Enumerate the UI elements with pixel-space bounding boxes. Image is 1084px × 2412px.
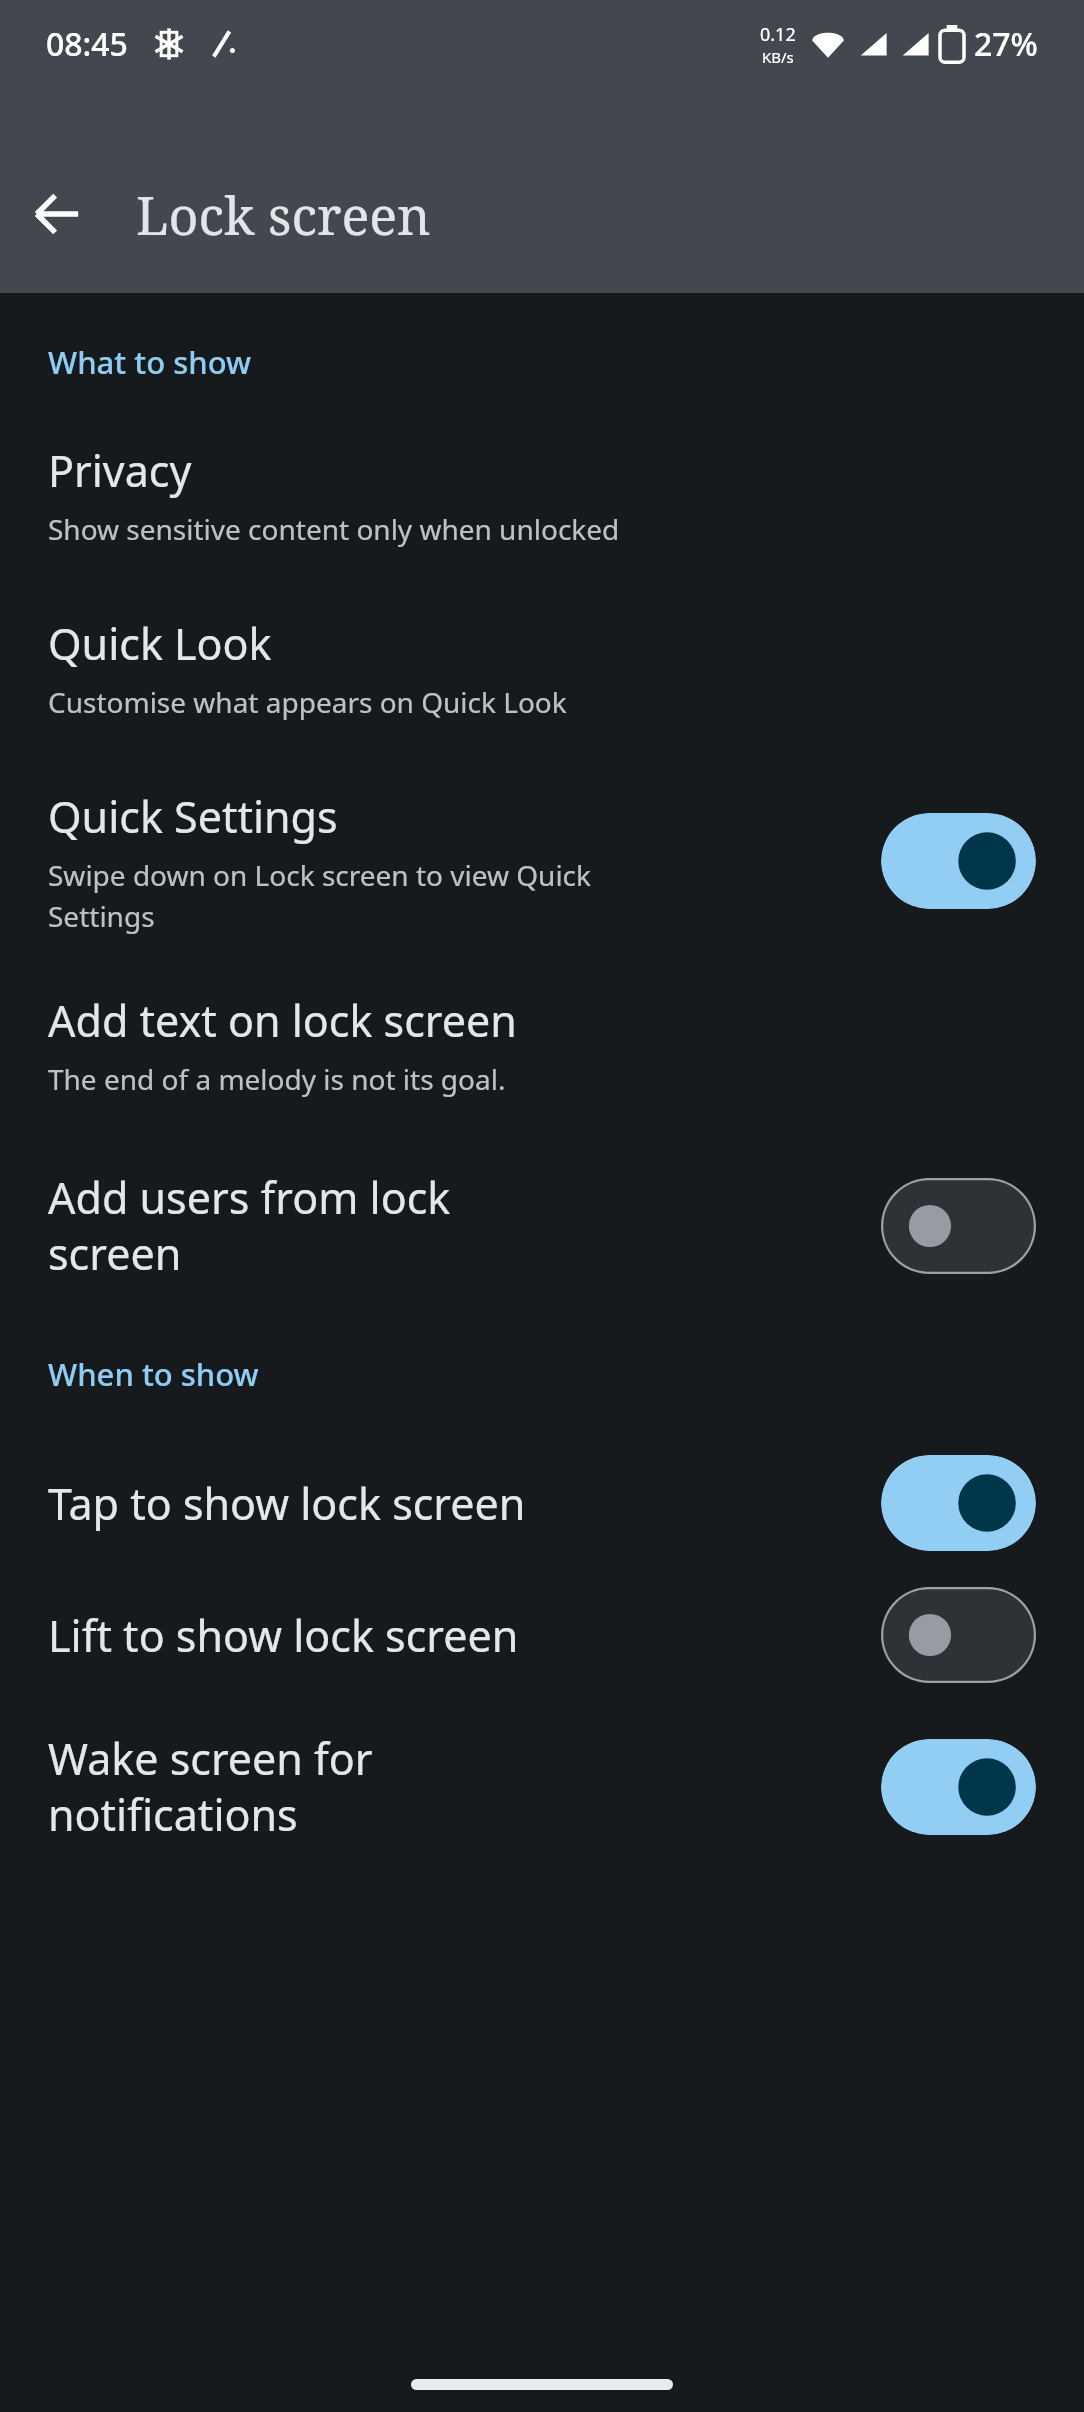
staticText: Add users from lock screen (48, 1168, 468, 1283)
staticText: 08:45 (46, 22, 128, 66)
staticText: Customise what appears on Quick Look (48, 683, 567, 721)
staticText: 27% (974, 22, 1038, 66)
staticText: Privacy (48, 441, 192, 500)
staticText: 0.12 (760, 22, 796, 47)
staticText: When to show (48, 1353, 259, 1395)
staticText: Tap to show lock screen (48, 1474, 526, 1533)
button[interactable]: Off (881, 1178, 1036, 1274)
button[interactable]: Quick Settings (0, 787, 1084, 935)
button[interactable]: Off (881, 1587, 1036, 1683)
staticText: Lift to show lock screen (48, 1606, 519, 1665)
button[interactable]: Quick Look (0, 614, 1084, 721)
staticText: Wake screen for notifications (48, 1729, 468, 1844)
button[interactable]: Lift to show lock screen (0, 1587, 1084, 1683)
button[interactable]: Tap to show lock screen (0, 1455, 1084, 1551)
staticText: KB/s (762, 47, 794, 67)
button[interactable]: Add text on lock screen (0, 991, 1084, 1098)
button[interactable]: Add users from lock screen (0, 1168, 1084, 1283)
staticText: Quick Look (48, 614, 272, 673)
button[interactable]: Back (20, 177, 94, 251)
staticText: Lock screen (136, 179, 431, 250)
staticText: Quick Settings (48, 787, 338, 846)
button[interactable]: Wake screen for notifications (0, 1729, 1084, 1844)
staticText: What to show (48, 341, 251, 383)
staticText: Swipe down on Lock screen to view Quick … (48, 856, 608, 935)
button[interactable]: On (881, 813, 1036, 909)
staticText: Add text on lock screen (48, 991, 517, 1050)
staticText: Show sensitive content only when unlocke… (48, 510, 620, 548)
button[interactable]: On (881, 1739, 1036, 1835)
staticText: The end of a melody is not its goal. (48, 1060, 506, 1098)
button[interactable]: On (881, 1455, 1036, 1551)
button[interactable]: Privacy (0, 441, 1084, 548)
